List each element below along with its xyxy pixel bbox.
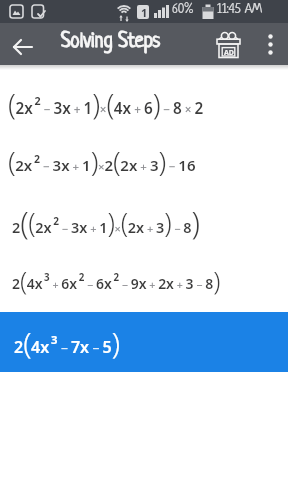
button[interactable]: 2(4x 3 − 7x − 5) [0, 312, 288, 372]
staticText: 2(4x 3 + 6x 2 − 6x 2 − 9x + 2x + 3 − 8) [12, 262, 220, 297]
staticText: 11:45 AM [217, 2, 263, 17]
button[interactable] [0, 23, 42, 65]
staticText: 2((2x 2 − 3x + 1)×(2x + 3) − 8) [12, 201, 200, 243]
staticText: Solving Steps [61, 31, 161, 53]
button[interactable]: (2x 2 − 3x + 1)×2(2x + 3) − 16 [0, 137, 288, 185]
button[interactable]: AD [212, 32, 246, 62]
button[interactable] [252, 23, 288, 65]
staticText: (2x 2 − 3x + 1)×(4x + 6) − 8 × 2 [8, 84, 204, 123]
staticText: AD [224, 48, 234, 58]
staticText: (2x 2 − 3x + 1)×2(2x + 3) − 16 [8, 142, 196, 180]
staticText: 2(4x 3 − 7x − 5) [14, 322, 120, 363]
staticText: 1 [141, 5, 148, 20]
button[interactable]: 2((2x 2 − 3x + 1)×(2x + 3) − 8) [0, 194, 288, 250]
button[interactable]: 2(4x 3 + 6x 2 − 6x 2 − 9x + 2x + 3 − 8) [0, 255, 288, 303]
button[interactable]: (2x 2 − 3x + 1)×(4x + 6) − 8 × 2 [0, 79, 288, 127]
staticText: 60% [172, 3, 193, 17]
